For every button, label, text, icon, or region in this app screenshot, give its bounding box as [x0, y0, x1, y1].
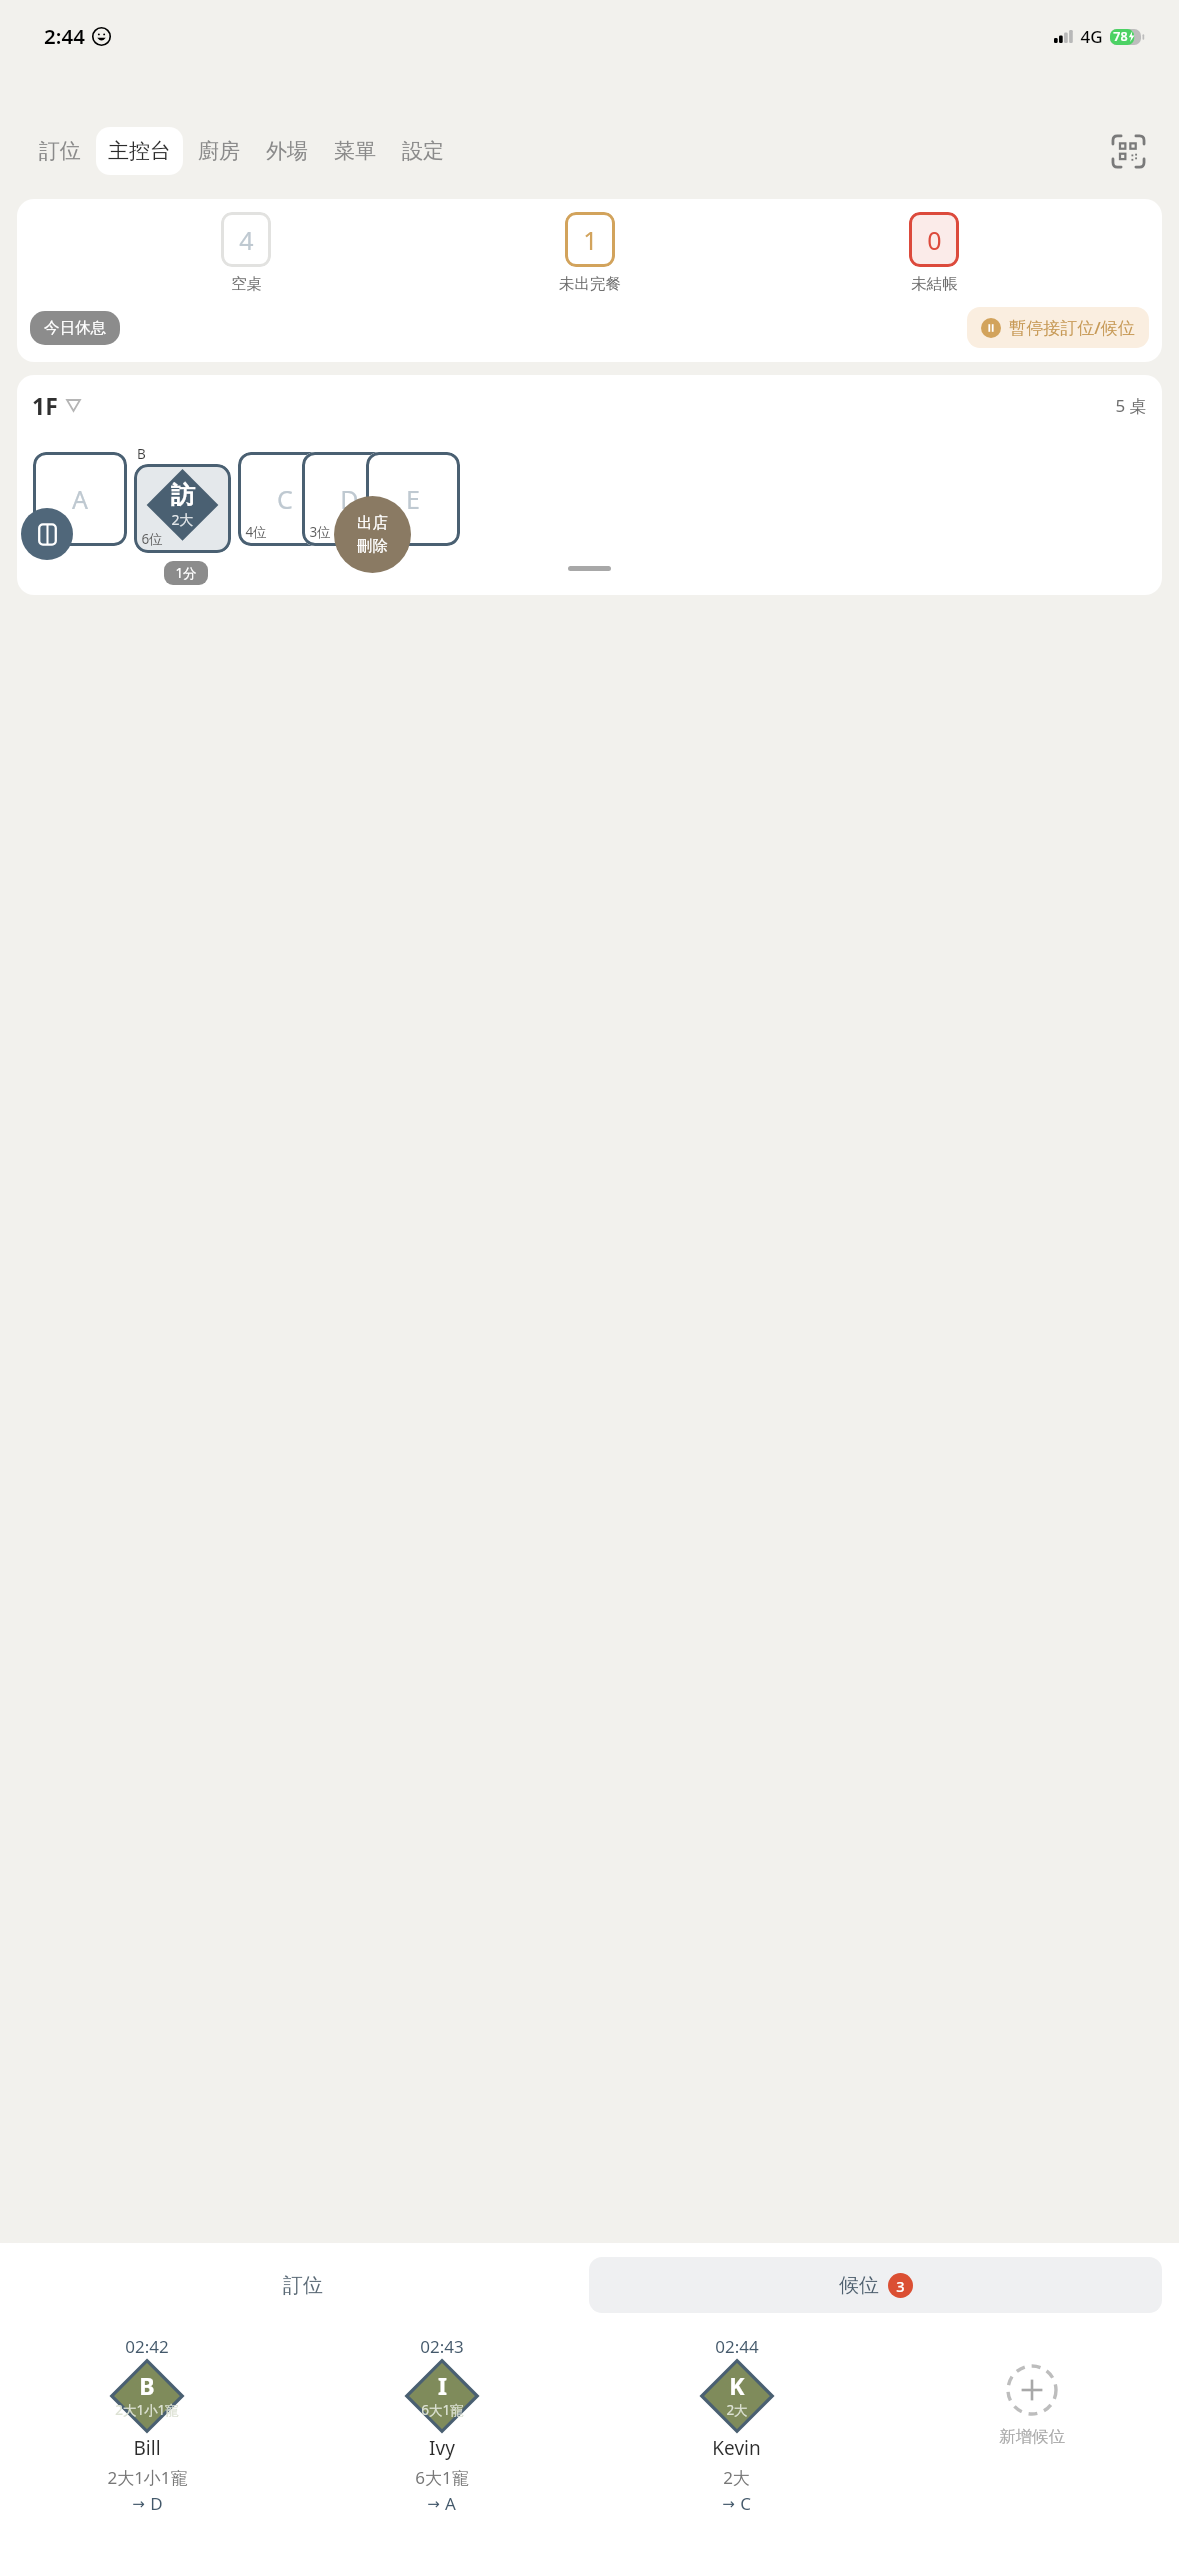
staticText: Ivy [429, 2435, 455, 2461]
staticText: 2:44 [44, 22, 85, 50]
staticText: 主控台 [108, 138, 171, 164]
button[interactable]: 4 [221, 212, 271, 267]
staticText: C [277, 482, 293, 516]
staticText: 6位 [141, 530, 163, 548]
staticText: 0 [927, 223, 942, 257]
button[interactable]: E [366, 452, 460, 546]
staticText: 5 桌 [1115, 394, 1147, 417]
button[interactable]: Scan QR code [1105, 128, 1151, 174]
staticText: 2大1小1寵 [115, 2401, 179, 2419]
button[interactable]: A [33, 452, 127, 546]
staticText: 4 [239, 223, 254, 257]
button[interactable]: 今日休息 [30, 311, 120, 345]
button[interactable]: 菜單 [321, 127, 389, 175]
staticText: 未出完餐 [559, 274, 621, 294]
button[interactable]: 1 [565, 212, 615, 267]
staticText: K [729, 2370, 745, 2401]
staticText: Kevin [712, 2435, 761, 2461]
staticText: → [427, 2495, 440, 2512]
button[interactable]: 訂位 [17, 2257, 589, 2313]
staticText: 訂位 [283, 2273, 323, 2298]
staticText: 刪除 [357, 536, 388, 556]
button[interactable]: 出店 [334, 496, 411, 573]
button[interactable]: 訂位 [26, 127, 94, 175]
staticText: 出店 [357, 513, 388, 533]
button[interactable]: 設定 [389, 127, 457, 175]
staticText: 4G [1080, 25, 1103, 48]
staticText: 1F [32, 390, 58, 421]
staticText: 6大1寵 [421, 2401, 464, 2419]
button[interactable]: C [238, 452, 332, 546]
staticText: 2大 [726, 2401, 748, 2419]
button[interactable]: 1F [32, 390, 80, 421]
staticText: 02:42 [125, 2335, 169, 2358]
button[interactable]: Split view [21, 508, 73, 560]
staticText: 4位 [373, 523, 395, 541]
button[interactable]: 新增候位 [1006, 2364, 1058, 2416]
staticText: 02:43 [420, 2335, 464, 2358]
staticText: D [340, 482, 359, 516]
button[interactable]: 候位 [589, 2257, 1162, 2313]
staticText: 今日休息 [44, 318, 106, 338]
staticText: A [72, 482, 88, 516]
staticText: 候位 [839, 2273, 879, 2298]
staticText: 2大 [723, 2466, 750, 2489]
staticText: 新增候位 [999, 2426, 1065, 2447]
button[interactable]: 02:42 [0, 2335, 294, 2515]
button[interactable]: 02:44 [589, 2335, 884, 2515]
staticText: 8位 [40, 523, 62, 541]
staticText: 3位 [309, 523, 331, 541]
staticText: 02:44 [715, 2335, 759, 2358]
staticText: 訂位 [39, 138, 81, 164]
staticText: 設定 [402, 138, 444, 164]
staticText: → [722, 2495, 735, 2512]
button[interactable]: 廚房 [185, 127, 253, 175]
staticText: 空桌 [231, 274, 262, 294]
staticText: 1 [583, 223, 598, 257]
staticText: B [139, 2370, 155, 2401]
staticText: 78 [1113, 28, 1128, 45]
staticText: A [445, 2492, 456, 2515]
staticText: 訪 [171, 480, 195, 510]
staticText: Bill [133, 2435, 161, 2461]
staticText: 1分 [175, 564, 197, 582]
staticText: B [137, 445, 146, 463]
staticText: D [150, 2492, 163, 2515]
button[interactable]: D [302, 452, 396, 546]
button[interactable]: 0 [909, 212, 959, 267]
staticText: 外場 [266, 138, 308, 164]
staticText: 暫停接訂位/候位 [1009, 316, 1135, 339]
button[interactable]: 主控台 [96, 127, 183, 175]
staticText: I [438, 2370, 447, 2401]
staticText: → [132, 2495, 145, 2512]
staticText: 2大 [171, 510, 194, 529]
staticText: 未結帳 [911, 274, 958, 294]
button[interactable]: 02:43 [294, 2335, 589, 2515]
button[interactable]: 外場 [253, 127, 321, 175]
staticText: 廚房 [198, 138, 240, 164]
staticText: 3 [896, 2276, 905, 2296]
staticText: C [740, 2492, 751, 2515]
staticText: 6大1寵 [415, 2466, 469, 2489]
staticText: 4位 [245, 523, 267, 541]
button[interactable]: 訪 [134, 464, 231, 553]
staticText: E [406, 482, 420, 516]
staticText: 2大1小1寵 [107, 2466, 188, 2489]
button[interactable]: 暫停接訂位/候位 [967, 307, 1149, 348]
staticText: 菜單 [334, 138, 376, 164]
